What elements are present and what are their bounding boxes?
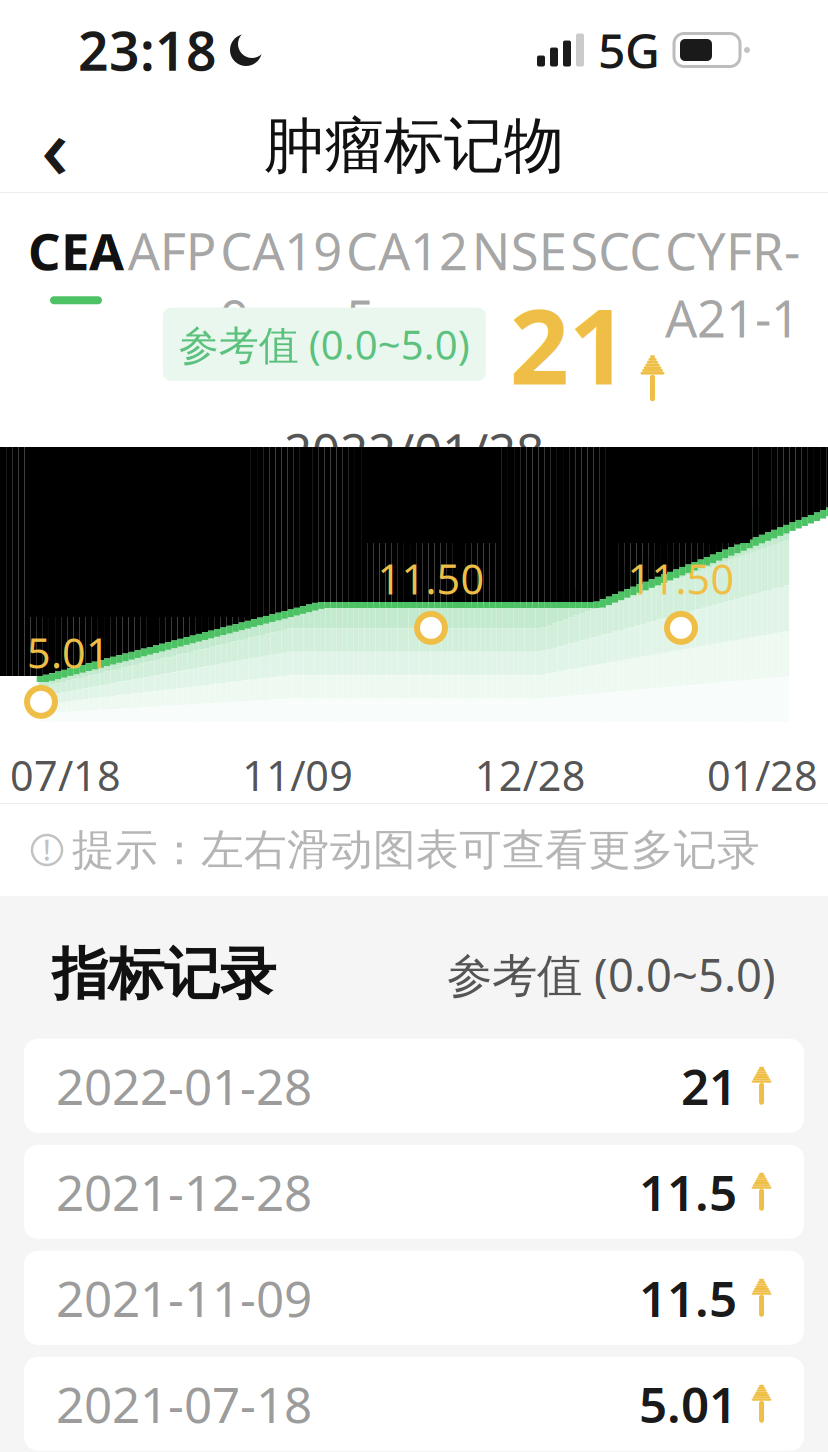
staticText: ! [43,831,51,869]
staticText: 提示：左右滑动图表可查看更多记录 [72,824,760,876]
staticText: 21 [681,1053,737,1118]
staticText: 5.01 [27,625,110,680]
staticText: 07/18 [10,748,121,802]
button[interactable]: SCC [570,217,661,304]
staticText: 11.5 [639,1159,737,1224]
button[interactable]: NSE [472,217,567,304]
staticText: CA199 [220,217,342,352]
button[interactable]: CYFRA21-1 [665,217,800,372]
staticText: CA125 [346,217,468,352]
staticText: 12/28 [475,748,586,802]
staticText: 2021-07-18 [56,1371,312,1436]
staticText: SCC [570,217,661,284]
staticText: 2021-12-28 [56,1159,312,1224]
staticText: 11.5 [639,1265,737,1330]
button[interactable]: AFP [128,217,217,304]
button[interactable]: 2021-12-28 [24,1145,804,1239]
staticText: 参考值 (0.0~5.0) [447,944,776,1004]
staticText: CYFRA21-1 [665,217,800,352]
button[interactable]: CEA [28,217,124,304]
staticText: 01/28 [707,748,818,802]
button[interactable]: 2022-01-28 [24,1039,804,1133]
staticText: ‹ [41,89,69,203]
staticText: 11/09 [242,748,353,802]
staticText: NSE [472,217,567,284]
staticText: 2021-11-09 [56,1265,312,1330]
staticText: 指标记录 [52,940,276,1009]
staticText: 5G [598,18,660,82]
staticText: 11.50 [377,551,484,606]
staticText: 11.50 [627,551,734,606]
button[interactable]: CA199 [220,217,342,372]
staticText: 21 [510,275,628,413]
button[interactable]: 2021-11-09 [24,1251,804,1345]
staticText: 2022/01/28 [284,417,544,483]
staticText: 参考值 (0.0~5.0) [179,318,470,371]
staticText: AFP [128,217,217,284]
button[interactable]: CA125 [346,217,468,372]
staticText: 2022-01-28 [56,1053,312,1118]
staticText: 23:18 [78,15,217,85]
staticText: 肿瘤标记物 [264,109,564,183]
staticText: 5.01 [639,1371,737,1436]
staticText: CEA [28,217,124,284]
button[interactable]: Back [0,100,110,192]
button[interactable]: 2021-07-18 [24,1357,804,1451]
